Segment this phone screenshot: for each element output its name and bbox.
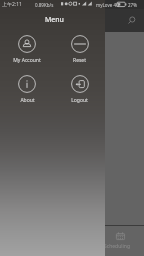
staticText: Menu [45,15,64,25]
staticText: Logout [71,97,88,104]
button[interactable]: Scheduling [104,225,136,256]
staticText: Scheduling [104,243,130,250]
button[interactable]: My Account [1,35,53,64]
button[interactable]: Search [124,13,140,29]
button[interactable]: Logout [53,75,106,104]
button[interactable]: About [1,75,53,104]
staticText: Reset [73,57,86,64]
staticText: 0.89Kb/s [35,2,54,8]
staticText: My Account [13,57,41,64]
staticText: 上午2:11 [2,1,22,8]
staticText: About [20,97,35,104]
staticText: 27% [128,2,137,8]
staticText: myLove 4G [96,2,120,8]
button[interactable]: Reset [53,35,106,64]
